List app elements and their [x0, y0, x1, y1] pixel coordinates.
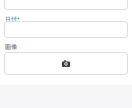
staticText: 日付* [5, 14, 20, 23]
button[interactable]: 日付 [4, 21, 127, 37]
staticText: 画像 [5, 42, 17, 51]
button[interactable]: 画像を追加 [4, 52, 127, 74]
